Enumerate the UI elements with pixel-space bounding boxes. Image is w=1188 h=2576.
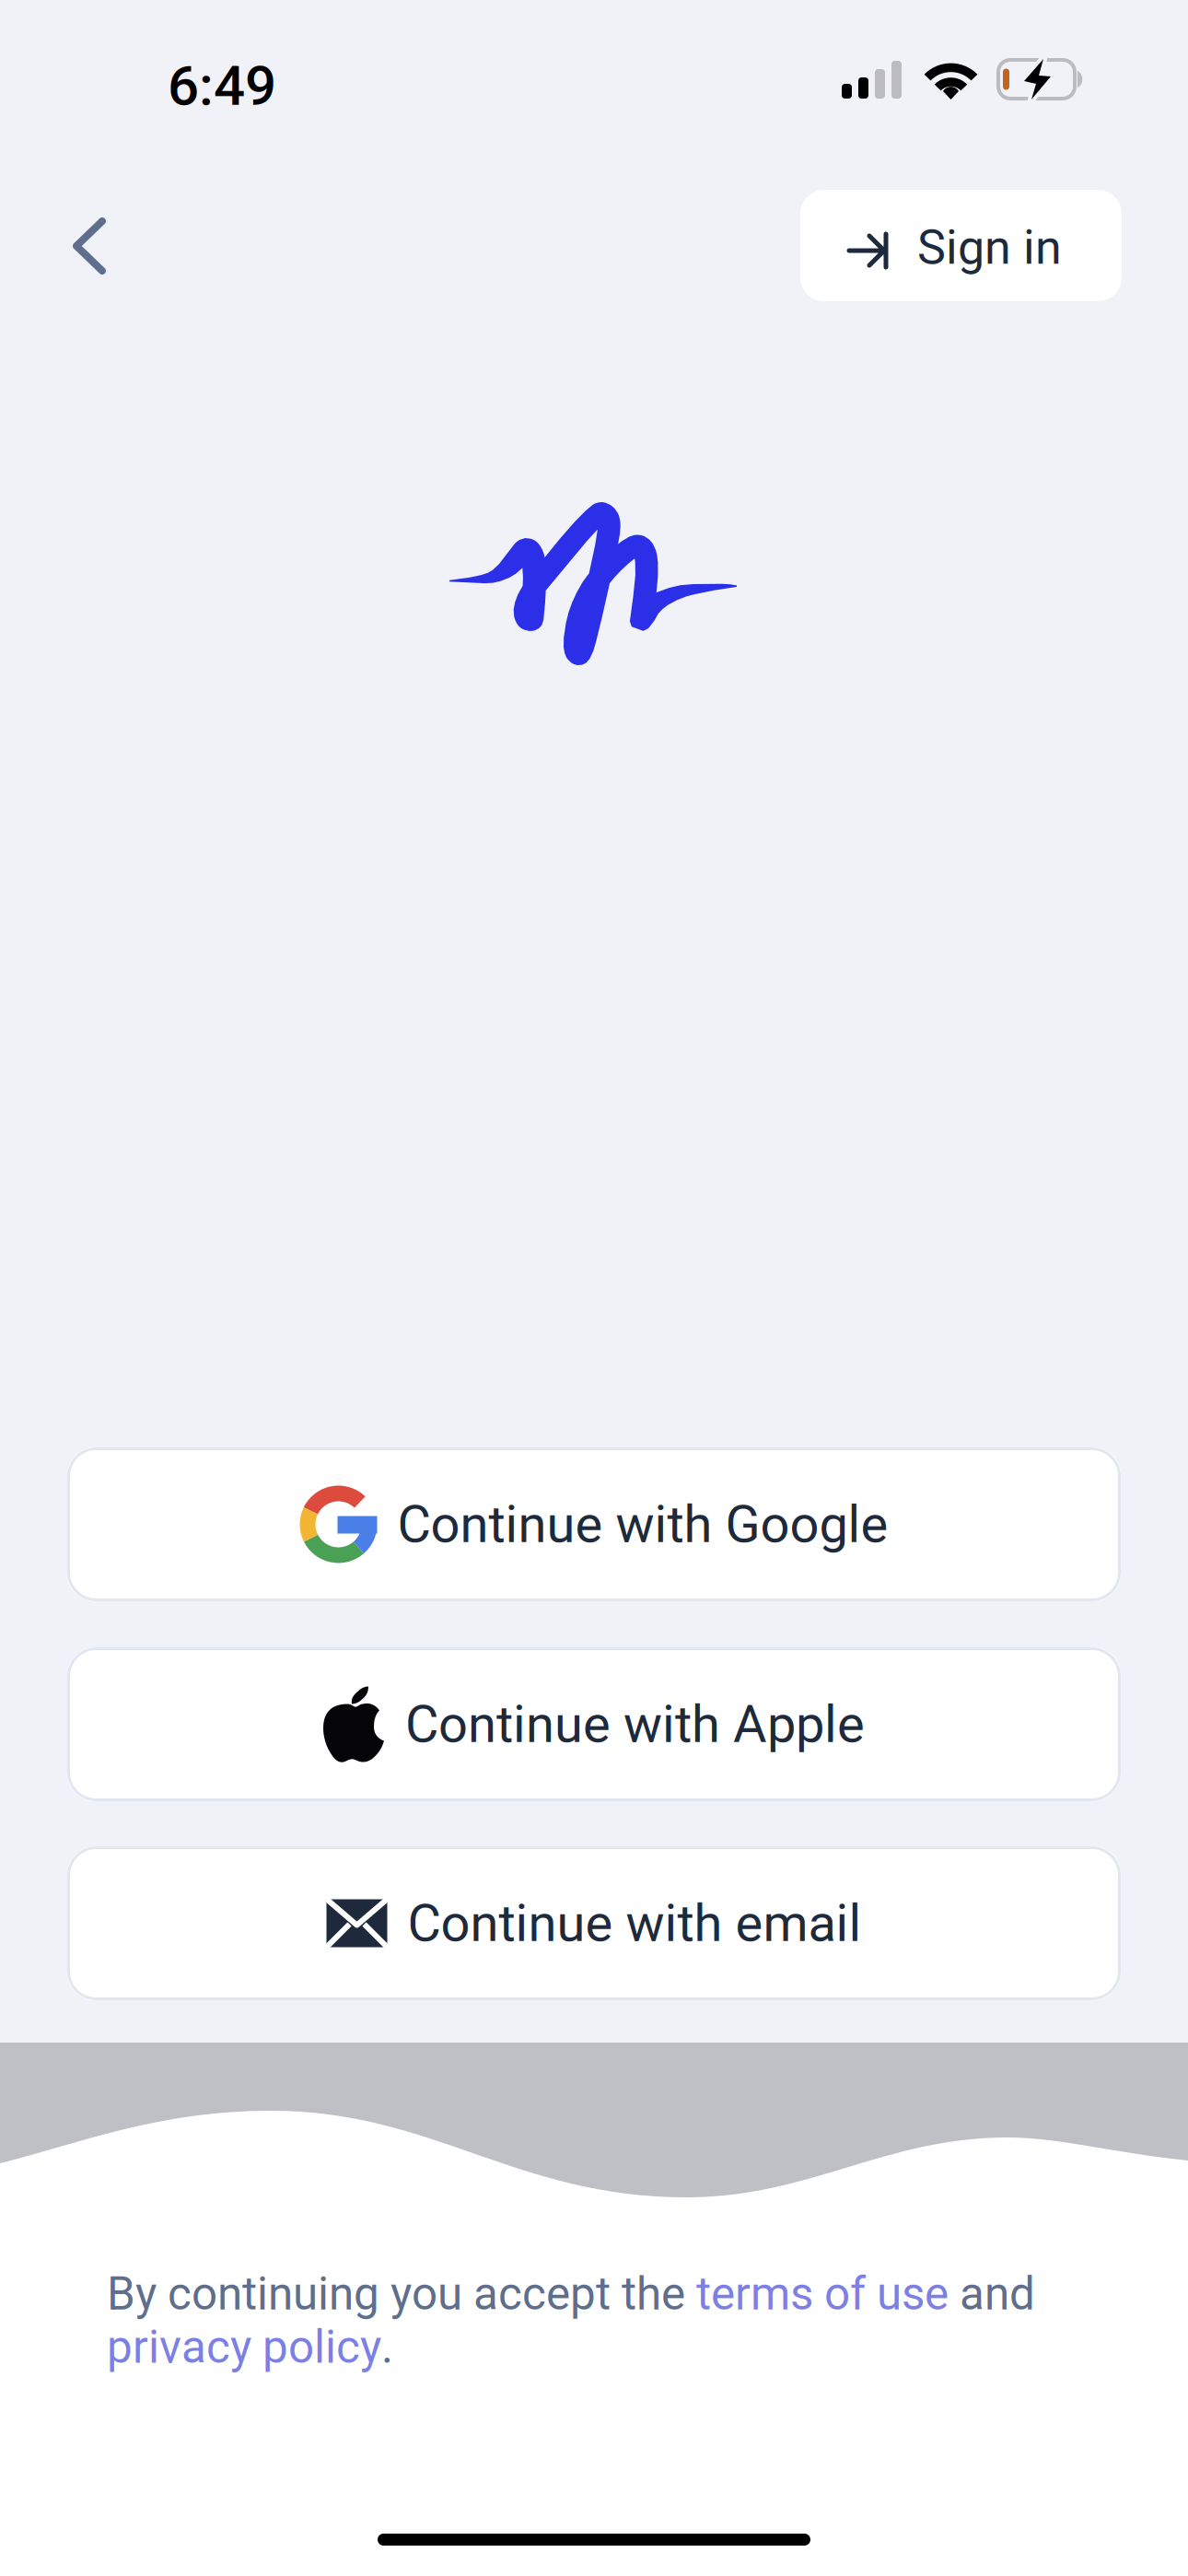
button[interactable]: Continue with email: [67, 1846, 1121, 2000]
staticText: Continue with Apple: [405, 1694, 865, 1754]
staticText: 6:49: [168, 53, 276, 118]
staticText: .: [381, 2321, 393, 2374]
button[interactable]: Continue with Google: [67, 1447, 1121, 1601]
button[interactable]: terms of use: [696, 2267, 949, 2321]
button[interactable]: privacy policy: [107, 2321, 381, 2374]
staticText: and: [949, 2267, 1035, 2321]
button[interactable]: Continue with Apple: [67, 1647, 1121, 1801]
button[interactable]: Back: [39, 198, 140, 299]
staticText: privacy policy: [107, 2321, 381, 2374]
staticText: Continue with Google: [397, 1494, 888, 1555]
staticText: Continue with email: [408, 1893, 862, 1953]
staticText: By continuing you accept the: [107, 2267, 696, 2321]
staticText: terms of use: [696, 2267, 949, 2321]
staticText: Sign in: [917, 219, 1062, 275]
button[interactable]: Sign in: [800, 190, 1122, 301]
